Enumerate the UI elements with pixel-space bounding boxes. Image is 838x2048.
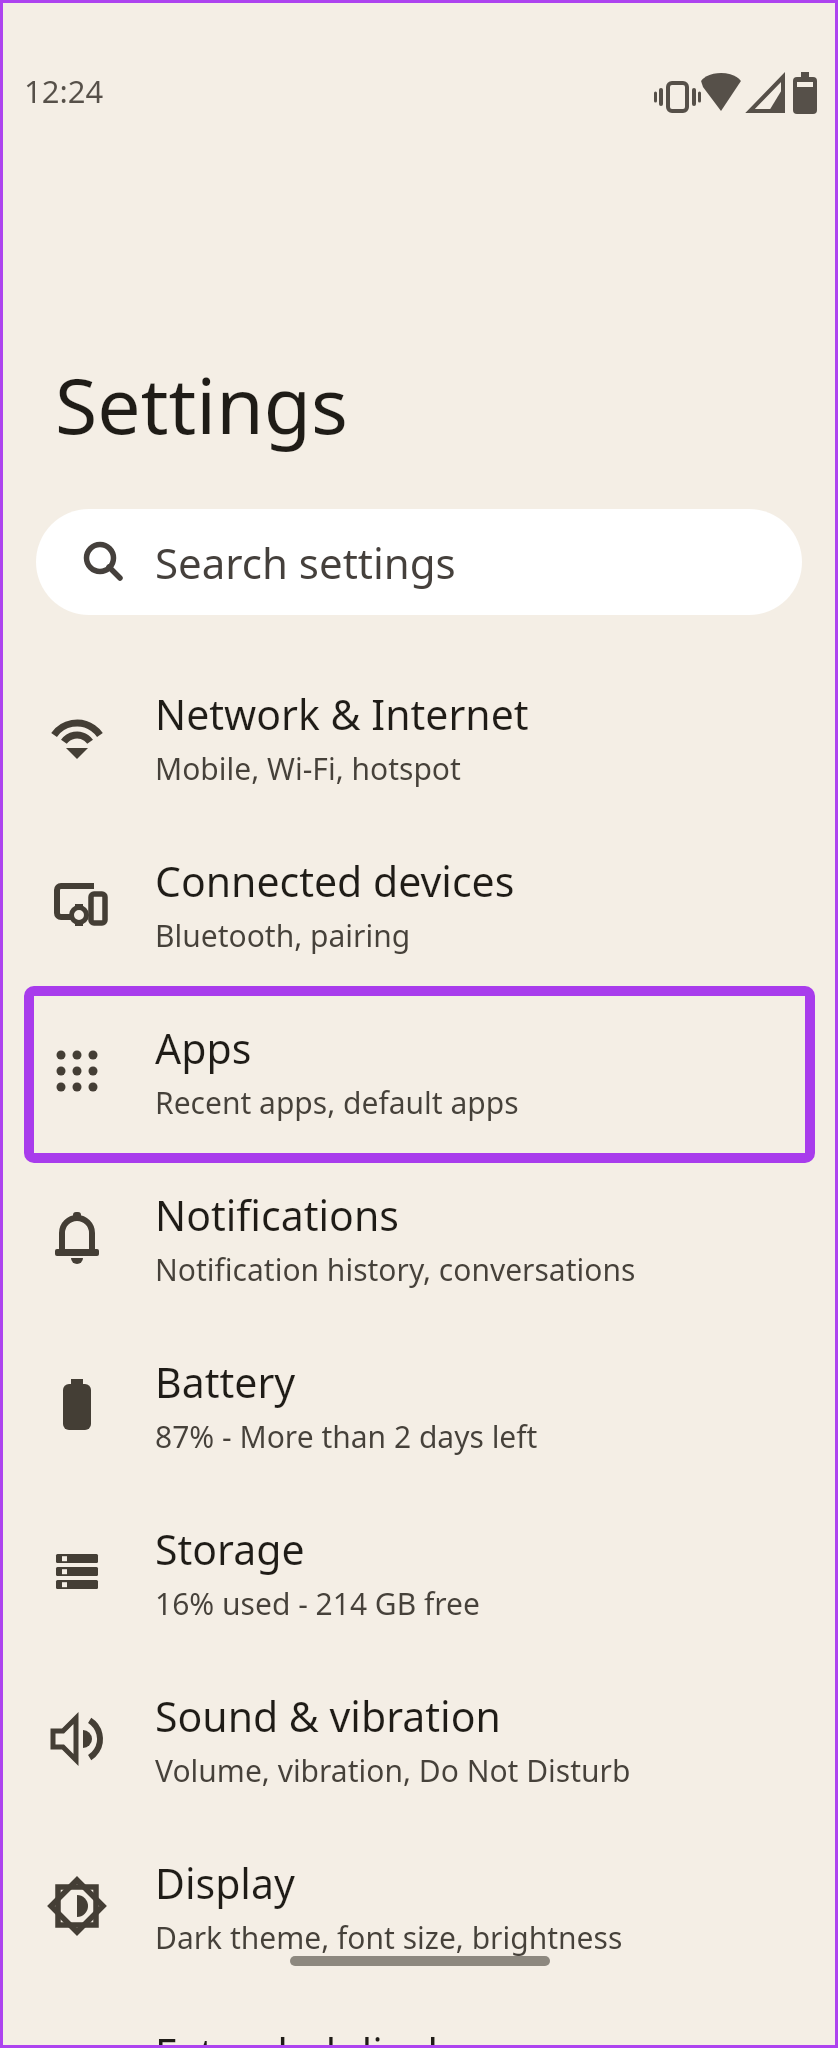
staticText: Notification history, conversations — [155, 1249, 636, 1290]
staticText: Dark theme, font size, brightness — [155, 1917, 623, 1958]
staticText: 12:24 — [24, 70, 104, 112]
staticText: Connected devices — [155, 853, 515, 909]
button[interactable]: Display — [0, 1823, 838, 1990]
staticText: 16% used - 214 GB free — [155, 1583, 480, 1624]
staticText: Display — [155, 1855, 295, 1911]
staticText: Storage — [155, 1521, 305, 1577]
button[interactable]: Search settings — [36, 509, 802, 615]
staticText: Volume, vibration, Do Not Disturb — [155, 1750, 631, 1791]
staticText: Extended display — [155, 2025, 483, 2048]
staticText: Apps — [155, 1020, 252, 1076]
button[interactable]: Notifications — [0, 1155, 838, 1322]
button[interactable]: Apps — [0, 988, 838, 1155]
staticText: Search settings — [155, 534, 456, 591]
button[interactable]: Sound & vibration — [0, 1656, 838, 1823]
staticText: Sound & vibration — [155, 1688, 501, 1744]
staticText: Settings — [55, 352, 348, 457]
button[interactable]: Connected devices — [0, 821, 838, 988]
staticText: Battery — [155, 1354, 296, 1410]
staticText: Mobile, Wi-Fi, hotspot — [155, 748, 461, 789]
staticText: Network & Internet — [155, 686, 529, 742]
button[interactable]: Network & Internet — [0, 654, 838, 821]
staticText: Notifications — [155, 1187, 399, 1243]
button[interactable]: Battery — [0, 1322, 838, 1489]
staticText: Bluetooth, pairing — [155, 915, 411, 956]
staticText: Recent apps, default apps — [155, 1082, 519, 1123]
staticText: 87% - More than 2 days left — [155, 1416, 538, 1457]
button[interactable]: Storage — [0, 1489, 838, 1656]
